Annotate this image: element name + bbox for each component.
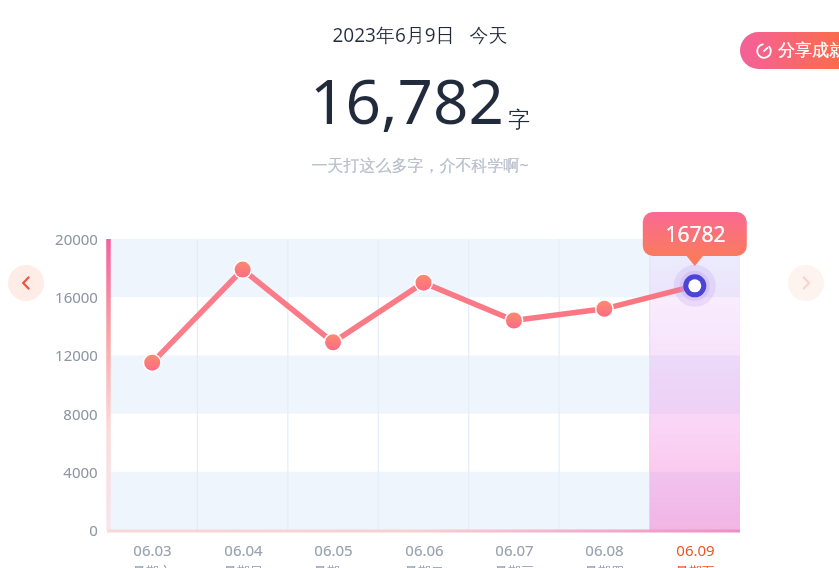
- button[interactable]: Next week: [788, 265, 824, 301]
- staticText: 16782: [665, 220, 726, 249]
- staticText: 06.08: [585, 540, 624, 560]
- button[interactable]: 06.06: [379, 540, 469, 568]
- button[interactable]: 06.04: [198, 540, 288, 568]
- button[interactable]: 06.09: [650, 540, 740, 568]
- button[interactable]: 06.05: [288, 540, 378, 568]
- staticText: 星期日: [224, 563, 263, 568]
- button[interactable]: 06.07: [469, 540, 559, 568]
- staticText: 星期二: [405, 563, 444, 568]
- staticText: 8000: [63, 404, 98, 424]
- staticText: 2023年6月9日 今天: [332, 22, 508, 48]
- button[interactable]: 分享成就: [740, 32, 839, 69]
- staticText: 星期三: [495, 563, 534, 568]
- staticText: 4000: [63, 462, 98, 482]
- staticText: 分享成就: [778, 40, 839, 61]
- staticText: 06.07: [495, 540, 534, 560]
- staticText: 星期五: [676, 563, 715, 568]
- staticText: 星期一: [314, 563, 353, 568]
- button[interactable]: Previous week: [8, 265, 44, 301]
- staticText: 0: [89, 520, 98, 540]
- button[interactable]: 06.08: [559, 540, 649, 568]
- staticText: 16000: [55, 287, 98, 307]
- staticText: 16,782: [310, 58, 504, 142]
- staticText: 20000: [55, 229, 98, 249]
- staticText: 星期六: [133, 563, 172, 568]
- staticText: 星期四: [585, 563, 624, 568]
- button[interactable]: 06.03: [107, 540, 197, 568]
- staticText: 06.04: [224, 540, 263, 560]
- staticText: 一天打这么多字，介不科学啊~: [311, 154, 529, 176]
- staticText: 06.05: [314, 540, 353, 560]
- staticText: 06.03: [133, 540, 172, 560]
- staticText: 12000: [55, 345, 98, 365]
- staticText: 字: [508, 106, 530, 134]
- staticText: 06.06: [405, 540, 444, 560]
- staticText: 06.09: [676, 540, 715, 560]
